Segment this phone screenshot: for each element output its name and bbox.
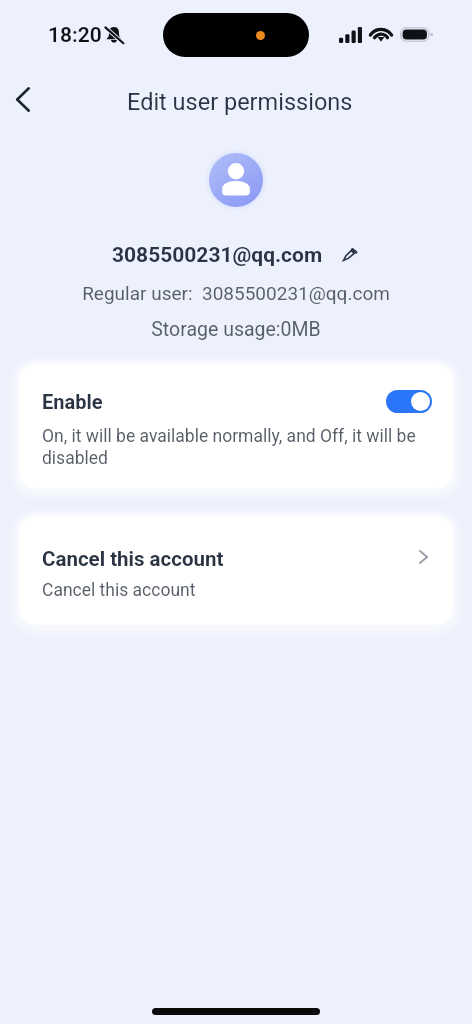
staticText: Enable	[42, 390, 103, 413]
staticText: Cancel this account	[42, 547, 224, 571]
button[interactable]: Enable toggle, on	[386, 390, 432, 413]
button[interactable]: Cancel this account	[19, 516, 453, 625]
button[interactable]: Edit user name	[340, 244, 360, 264]
staticText: Edit user permissions	[127, 88, 353, 116]
staticText: 18:20	[48, 23, 102, 48]
staticText: Storage usage:0MB	[0, 318, 472, 341]
button[interactable]: Back	[0, 76, 46, 122]
staticText: Regular user: 3085500231@qq.com	[0, 282, 472, 304]
button[interactable]: Enable	[42, 390, 432, 413]
staticText: On, it will be available normally, and O…	[42, 426, 432, 468]
staticText: 3085500231@qq.com	[112, 243, 323, 268]
other: Open	[414, 548, 432, 566]
staticText: Cancel this account	[42, 580, 196, 601]
